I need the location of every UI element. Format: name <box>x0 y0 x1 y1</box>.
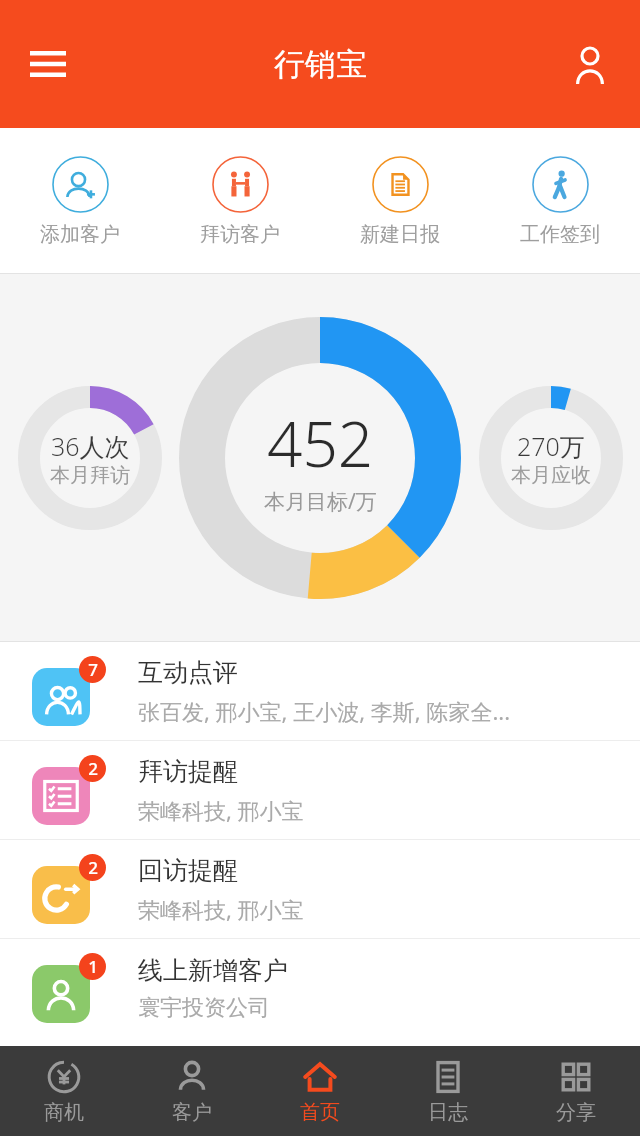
button[interactable]: 商机 <box>0 1046 128 1136</box>
staticText: 商机 <box>44 1100 84 1125</box>
staticText: 本月拜访 <box>50 463 130 488</box>
staticText: 日志 <box>428 1100 468 1125</box>
staticText: 添加客户 <box>40 222 120 247</box>
staticText: 新建日报 <box>360 222 440 247</box>
button[interactable]: Menu <box>16 32 80 96</box>
staticText: 2 <box>88 856 98 879</box>
button[interactable]: 日志 <box>384 1046 512 1136</box>
button[interactable]: 新建日报 <box>320 128 480 274</box>
button[interactable]: 添加客户 <box>0 128 160 274</box>
button[interactable]: 工作签到 <box>480 128 640 274</box>
staticText: 互动点评 <box>138 657 238 688</box>
button[interactable]: 2 <box>0 741 640 839</box>
staticText: 荣峰科技, 邢小宝 <box>138 894 304 924</box>
button[interactable]: 客户 <box>128 1046 256 1136</box>
button[interactable]: 7 <box>0 642 640 740</box>
staticText: 行销宝 <box>274 45 367 84</box>
staticText: 回访提醒 <box>138 855 238 886</box>
staticText: 452 <box>267 401 374 485</box>
staticText: 分享 <box>556 1100 596 1125</box>
staticText: 寰宇投资公司 <box>138 994 270 1022</box>
staticText: 7 <box>88 658 98 681</box>
button[interactable]: 分享 <box>512 1046 640 1136</box>
staticText: 本月目标/万 <box>264 487 377 516</box>
button[interactable]: 1 <box>0 939 640 1037</box>
staticText: 线上新增客户 <box>138 955 288 986</box>
button[interactable]: 首页 <box>256 1046 384 1136</box>
staticText: 工作签到 <box>520 222 600 247</box>
button[interactable]: 拜访客户 <box>160 128 320 274</box>
staticText: 36人次 <box>51 429 130 463</box>
button[interactable]: Profile <box>558 32 622 96</box>
staticText: 本月应收 <box>511 463 591 488</box>
staticText: 2 <box>88 757 98 780</box>
button[interactable]: 2 <box>0 840 640 938</box>
staticText: 荣峰科技, 邢小宝 <box>138 795 304 825</box>
staticText: 客户 <box>172 1100 212 1125</box>
staticText: 拜访客户 <box>200 222 280 247</box>
staticText: 270万 <box>517 429 585 463</box>
staticText: 首页 <box>300 1100 340 1125</box>
staticText: 拜访提醒 <box>138 756 238 787</box>
staticText: 1 <box>88 955 98 978</box>
staticText: 张百发, 邢小宝, 王小波, 李斯, 陈家全... <box>138 696 511 726</box>
